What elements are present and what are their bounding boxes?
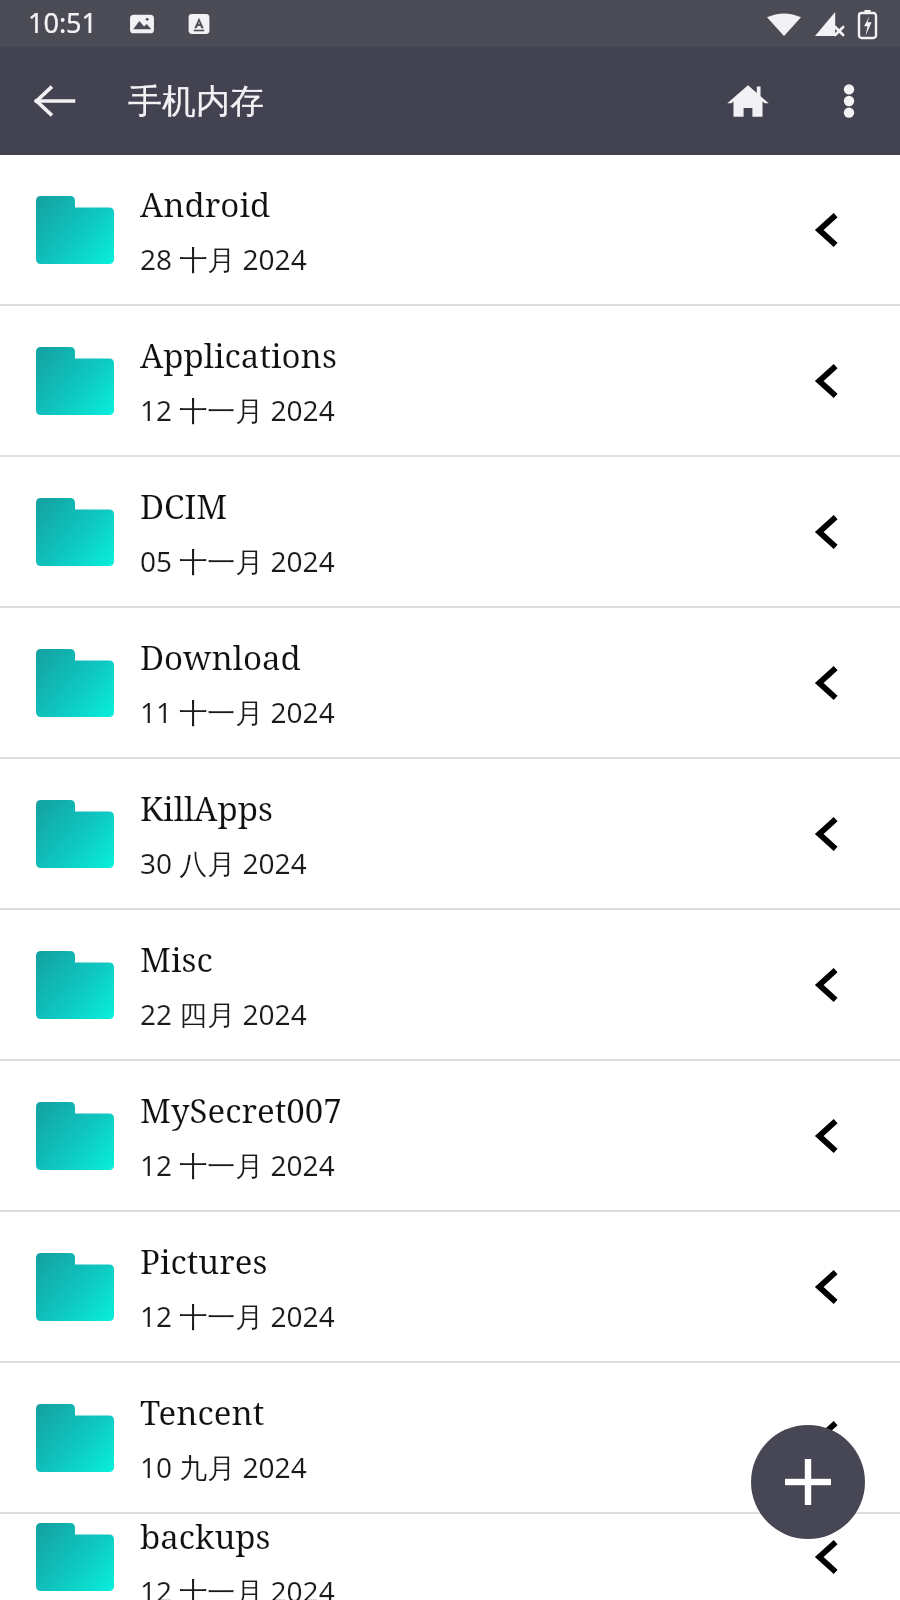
button[interactable]: Open Android [784,188,868,272]
staticText: DCIM [140,484,228,529]
button[interactable]: Open MySecret007 [784,1094,868,1178]
button[interactable]: Tencent [0,1363,900,1512]
staticText: 10:51 [28,4,98,41]
button[interactable]: Pictures [0,1212,900,1361]
button[interactable]: Download [0,608,900,757]
button[interactable]: Applications [0,306,900,455]
staticText: MySecret007 [140,1088,342,1133]
button[interactable]: Misc [0,910,900,1059]
button[interactable]: Open Misc [784,943,868,1027]
staticText: Download [140,635,301,680]
button[interactable]: Open KillApps [784,792,868,876]
staticText: 11 十一月 2024 [140,693,335,731]
staticText: 12 十一月 2024 [140,1146,335,1184]
button[interactable]: Android [0,155,900,304]
staticText: 30 八月 2024 [140,844,307,882]
button[interactable]: More options [810,62,888,140]
button[interactable]: Open DCIM [784,490,868,574]
button[interactable]: KillApps [0,759,900,908]
staticText: Pictures [140,1239,268,1284]
button[interactable]: Home [706,59,790,143]
staticText: 12 十一月 2024 [140,391,335,429]
staticText: Tencent [140,1390,265,1435]
button[interactable]: DCIM [0,457,900,606]
button[interactable]: backups [0,1514,900,1600]
button[interactable]: Open Pictures [784,1245,868,1329]
staticText: Android [140,182,271,227]
staticText: 10 九月 2024 [140,1448,307,1486]
staticText: KillApps [140,786,273,831]
staticText: 12 十一月 2024 [140,1572,335,1600]
staticText: 28 十月 2024 [140,240,307,278]
staticText: Applications [140,333,337,378]
staticText: Misc [140,937,213,982]
button[interactable]: Add [751,1425,865,1539]
button[interactable]: Open Tencent [784,1396,868,1480]
button[interactable]: Open backups [784,1515,868,1599]
staticText: 22 四月 2024 [140,995,307,1033]
button[interactable]: Open Download [784,641,868,725]
staticText: 手机内存 [128,80,264,123]
staticText: backups [140,1514,271,1559]
button[interactable]: Back [14,60,96,142]
staticText: 12 十一月 2024 [140,1297,335,1335]
button[interactable]: MySecret007 [0,1061,900,1210]
button[interactable]: Open Applications [784,339,868,423]
staticText: 05 十一月 2024 [140,542,335,580]
